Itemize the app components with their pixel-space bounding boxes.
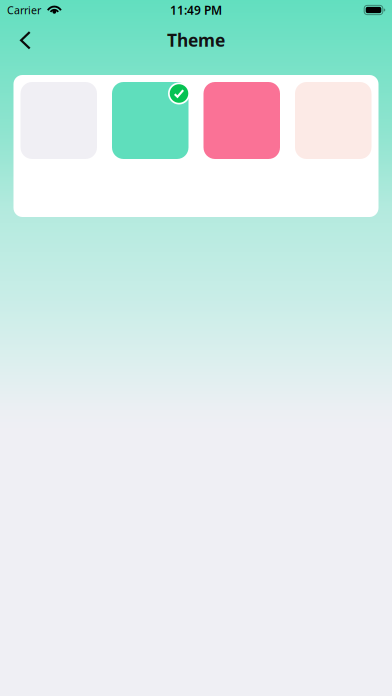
button[interactable]: Back xyxy=(6,20,44,58)
staticText: 11:49 PM xyxy=(170,2,222,18)
button[interactable]: Pink theme xyxy=(203,82,280,159)
button[interactable]: Mint theme, selected xyxy=(112,82,188,159)
staticText: Theme xyxy=(167,28,225,51)
button[interactable]: Blush theme xyxy=(295,82,371,159)
staticText: Carrier xyxy=(7,3,41,17)
